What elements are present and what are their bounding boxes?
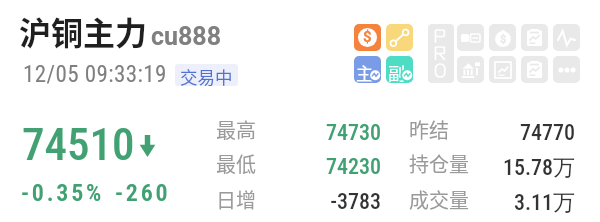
staticText: -3783 bbox=[281, 189, 381, 215]
staticText: 最低 bbox=[216, 149, 256, 178]
staticText: 成交量 bbox=[409, 185, 469, 214]
staticText: 昨结 bbox=[409, 115, 449, 144]
button[interactable]: Ranking bbox=[457, 24, 484, 51]
button[interactable]: Price bbox=[354, 24, 381, 51]
staticText: 74770 bbox=[475, 120, 575, 146]
staticText: -260 bbox=[115, 179, 171, 207]
button[interactable]: More bbox=[553, 56, 580, 83]
staticText: 15.78万 bbox=[475, 154, 575, 182]
staticText: $ bbox=[363, 28, 372, 46]
staticText: 12/05 09:33:19 bbox=[23, 61, 167, 88]
staticText: $ bbox=[500, 33, 507, 46]
button[interactable]: 交易中 bbox=[175, 64, 238, 86]
staticText: 交易中 bbox=[180, 64, 233, 86]
staticText: 日增 bbox=[216, 185, 256, 214]
staticText: cu888 bbox=[151, 22, 222, 51]
staticText: 最高 bbox=[216, 115, 256, 144]
button[interactable]: Analysis bbox=[521, 56, 548, 83]
staticText: 主 bbox=[356, 60, 373, 83]
button[interactable]: Report bbox=[521, 24, 548, 51]
staticText: 沪铜主力 bbox=[19, 8, 148, 54]
button[interactable]: Statistics bbox=[457, 56, 484, 83]
button[interactable]: Pulse bbox=[553, 24, 580, 51]
button[interactable]: Sub indicator bbox=[386, 56, 413, 83]
staticText: 74230 bbox=[281, 154, 381, 180]
button[interactable]: PRO bbox=[428, 24, 454, 83]
button[interactable]: Trendline bbox=[386, 24, 413, 51]
staticText: -0.35% bbox=[21, 179, 105, 207]
button[interactable]: Trend bbox=[489, 56, 516, 83]
staticText: 持仓量 bbox=[409, 149, 469, 178]
staticText: 74730 bbox=[281, 120, 381, 146]
staticText: 3.11万 bbox=[475, 189, 575, 217]
staticText: 副 bbox=[388, 60, 405, 83]
staticText: 74510 bbox=[22, 118, 135, 171]
button[interactable]: Capital bbox=[489, 24, 516, 51]
button[interactable]: Main indicator bbox=[354, 56, 381, 83]
